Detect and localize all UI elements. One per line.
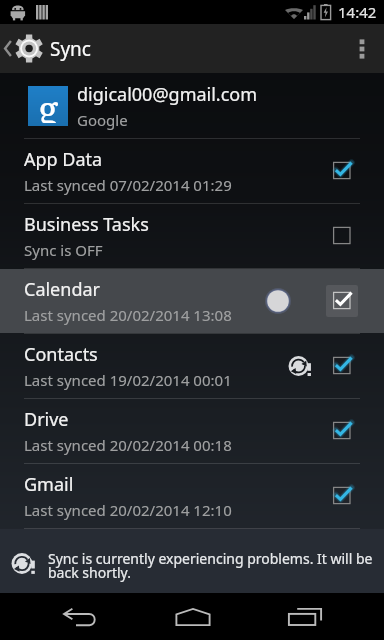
staticText: Business Tasks: [24, 212, 149, 237]
staticText: Sync is currently experiencing problems.…: [48, 549, 378, 582]
staticText: Google: [77, 110, 128, 130]
button[interactable]: Contacts: [0, 334, 384, 398]
staticText: Last synced 20/02/2014 00:18: [24, 435, 232, 455]
staticText: Last synced 20/02/2014 12:10: [24, 500, 232, 520]
button[interactable]: Gmail: [0, 464, 384, 528]
staticText: Sync: [50, 36, 91, 62]
button[interactable]: Drive: [0, 399, 384, 463]
button[interactable]: App Data: [0, 139, 384, 203]
button[interactable]: Home: [136, 593, 249, 640]
button[interactable]: Sync toggle: [326, 285, 358, 317]
staticText: Last synced 20/02/2014 13:08: [24, 305, 232, 325]
button[interactable]: More options: [340, 24, 384, 73]
button[interactable]: Back: [24, 593, 136, 640]
button[interactable]: Sync toggle: [326, 480, 358, 512]
button[interactable]: Navigate up: [0, 24, 91, 73]
staticText: Contacts: [24, 342, 98, 367]
button[interactable]: Recent apps: [249, 593, 361, 640]
staticText: Gmail: [24, 472, 74, 497]
button[interactable]: Sync toggle: [326, 155, 358, 187]
staticText: 14:42: [338, 2, 377, 22]
button[interactable]: Calendar: [0, 269, 384, 333]
staticText: Sync is OFF: [24, 240, 103, 260]
staticText: Drive: [24, 407, 69, 432]
staticText: g: [38, 83, 59, 123]
button[interactable]: Sync toggle: [326, 350, 358, 382]
button[interactable]: Sync toggle: [326, 415, 358, 447]
staticText: App Data: [24, 147, 103, 172]
staticText: digical00@gmail.com: [77, 82, 258, 107]
staticText: Last synced 07/02/2014 01:29: [24, 175, 232, 195]
staticText: Last synced 19/02/2014 00:01: [24, 370, 232, 390]
button[interactable]: g: [0, 73, 384, 138]
button[interactable]: Business Tasks: [0, 204, 384, 268]
staticText: Calendar: [24, 277, 100, 302]
button[interactable]: Sync toggle: [326, 220, 358, 252]
button[interactable]: Sync is currently experiencing problems.…: [0, 529, 384, 593]
